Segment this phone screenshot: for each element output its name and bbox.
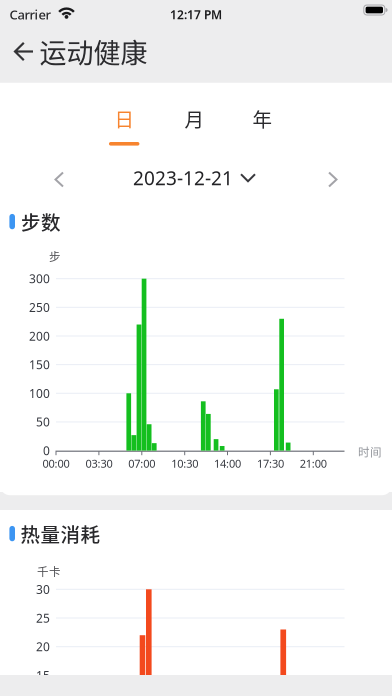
staticText: 200 xyxy=(29,328,50,344)
staticText: 运动健康 xyxy=(39,32,147,71)
button[interactable]: 年 xyxy=(234,100,290,136)
button[interactable]: 2023-12-21 xyxy=(133,165,255,191)
staticText: 时间 xyxy=(358,443,382,460)
staticText: 03:30 xyxy=(85,456,112,471)
staticText: 17:30 xyxy=(257,456,284,471)
staticText: 30 xyxy=(36,581,50,597)
staticText: 00:00 xyxy=(42,456,69,471)
staticText: 100 xyxy=(29,385,50,401)
staticText: 21:00 xyxy=(300,456,327,471)
button[interactable]: Previous day xyxy=(39,157,79,201)
staticText: 热量消耗 xyxy=(20,519,100,548)
button[interactable]: Next day xyxy=(313,157,353,201)
staticText: 2023-12-21 xyxy=(133,165,233,191)
button[interactable]: 月 xyxy=(166,100,222,136)
staticText: 50 xyxy=(36,414,50,430)
staticText: 0 xyxy=(43,443,50,458)
staticText: 20 xyxy=(36,639,50,655)
staticText: 300 xyxy=(29,271,50,287)
staticText: 07:00 xyxy=(128,456,155,471)
staticText: 年 xyxy=(252,104,272,133)
staticText: 步 xyxy=(49,248,61,264)
staticText: 月 xyxy=(184,104,204,133)
staticText: 12:17 PM xyxy=(170,6,222,22)
staticText: 10:30 xyxy=(171,456,198,471)
staticText: Carrier xyxy=(9,6,50,23)
staticText: 250 xyxy=(29,299,50,315)
staticText: 25 xyxy=(36,610,50,626)
staticText: 千卡 xyxy=(37,563,61,579)
staticText: 150 xyxy=(29,357,50,373)
button[interactable]: 日 xyxy=(96,100,152,136)
button[interactable]: Back xyxy=(4,31,44,71)
staticText: 14:00 xyxy=(214,456,241,471)
staticText: 步数 xyxy=(21,207,61,236)
staticText: 日 xyxy=(114,104,134,133)
staticText: 15 xyxy=(36,667,50,683)
